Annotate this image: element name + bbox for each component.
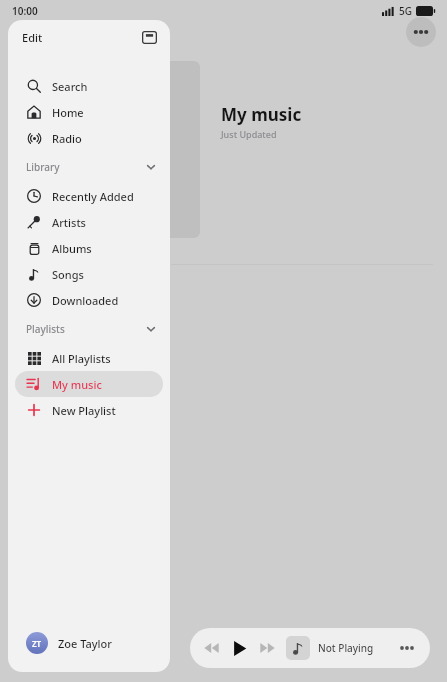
button[interactable]: Playlists (26, 313, 156, 345)
staticText: Downloaded (52, 293, 119, 308)
staticText: My music (52, 377, 102, 392)
staticText: 10:00 (12, 4, 38, 18)
button[interactable]: Next (258, 639, 276, 657)
button[interactable]: More (396, 637, 418, 659)
button[interactable]: Radio (26, 125, 163, 151)
button[interactable]: My music (26, 371, 163, 397)
button[interactable]: Play (230, 639, 248, 657)
staticText: Songs (52, 267, 84, 282)
staticText: Recently Added (52, 189, 134, 204)
button[interactable]: New Playlist (26, 397, 163, 423)
button[interactable]: Search (26, 73, 163, 99)
staticText: All Playlists (52, 351, 111, 366)
button[interactable]: Recently Added (26, 183, 163, 209)
staticText: Zoe Taylor (58, 636, 112, 651)
staticText: Not Playing (318, 641, 374, 655)
staticText: Albums (52, 241, 92, 256)
button[interactable]: Home (26, 99, 163, 125)
button[interactable]: Edit (22, 30, 43, 45)
button[interactable]: More options (406, 17, 436, 47)
staticText: Library (26, 160, 60, 174)
button[interactable]: Artists (26, 209, 163, 235)
staticText: Artists (52, 215, 86, 230)
button[interactable]: Previous (202, 639, 220, 657)
staticText: Edit (22, 30, 43, 45)
button[interactable]: All Playlists (26, 345, 163, 371)
button[interactable]: Albums (26, 235, 163, 261)
button[interactable]: Toggle sidebar (138, 26, 160, 48)
button[interactable]: Previous (202, 628, 418, 668)
button[interactable]: Songs (26, 261, 163, 287)
staticText: Radio (52, 131, 82, 146)
button[interactable]: Downloaded (26, 287, 163, 313)
staticText: Search (52, 79, 88, 94)
staticText: Just Updated (221, 128, 277, 140)
staticText: Home (52, 105, 84, 120)
button[interactable]: ZT (26, 618, 170, 668)
button[interactable]: Library (26, 151, 156, 183)
staticText: Playlists (26, 322, 65, 336)
staticText: New Playlist (52, 403, 116, 418)
staticText: ZT (32, 638, 42, 649)
staticText: 5G (399, 4, 412, 18)
staticText: My music (221, 103, 302, 126)
